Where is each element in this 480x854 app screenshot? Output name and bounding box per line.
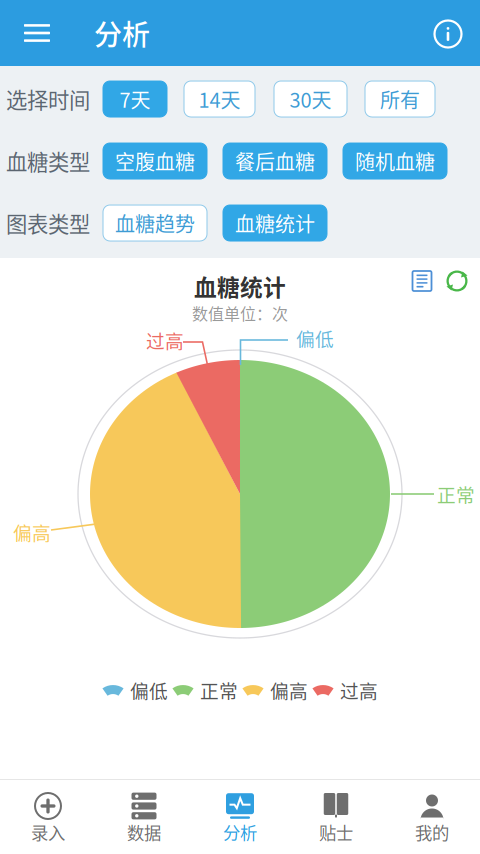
button[interactable]: 随机血糖 xyxy=(343,143,447,179)
staticText: 过高 xyxy=(340,676,378,703)
staticText: 贴士 xyxy=(319,819,353,845)
staticText: 正常 xyxy=(437,480,475,507)
staticText: 所有 xyxy=(380,84,420,113)
button[interactable]: 贴士 xyxy=(288,779,384,854)
staticText: 血糖统计 xyxy=(235,208,315,237)
staticText: 偏低 xyxy=(130,676,168,703)
button[interactable]: 餐后血糖 xyxy=(223,143,327,179)
staticText: 随机血糖 xyxy=(355,146,435,175)
staticText: 7天 xyxy=(119,84,150,113)
button[interactable]: 30天 xyxy=(274,81,347,117)
button[interactable]: 血糖趋势 xyxy=(103,205,207,241)
staticText: 空腹血糖 xyxy=(115,146,195,175)
staticText: 数值单位：次 xyxy=(192,301,288,325)
staticText: 14天 xyxy=(198,84,240,113)
button[interactable]: Refresh xyxy=(445,269,469,293)
button[interactable]: 7天 xyxy=(103,81,167,117)
staticText: 我的 xyxy=(415,819,449,845)
button[interactable]: 录入 xyxy=(0,779,96,854)
staticText: 录入 xyxy=(31,819,65,845)
staticText: 数据 xyxy=(127,819,161,845)
button[interactable]: 14天 xyxy=(184,81,255,117)
staticText: 偏低 xyxy=(296,324,334,351)
staticText: 餐后血糖 xyxy=(235,146,315,175)
staticText: 血糖趋势 xyxy=(115,208,195,237)
button[interactable]: 我的 xyxy=(384,779,480,854)
staticText: 30天 xyxy=(289,84,331,113)
staticText: 血糖统计 xyxy=(194,270,286,302)
staticText: 图表类型 xyxy=(6,208,90,238)
button[interactable]: 数据 xyxy=(96,779,192,854)
button[interactable]: Info xyxy=(421,1,475,67)
staticText: 偏高 xyxy=(270,676,308,703)
button[interactable]: 分析 xyxy=(192,779,288,854)
staticText: 血糖类型 xyxy=(6,146,90,176)
staticText: 正常 xyxy=(200,676,238,703)
button[interactable]: 所有 xyxy=(365,81,435,117)
staticText: 过高 xyxy=(146,326,184,353)
button[interactable]: Report xyxy=(411,269,433,293)
staticText: 分析 xyxy=(223,819,257,845)
staticText: 选择时间 xyxy=(6,84,90,114)
button[interactable]: 血糖统计 xyxy=(223,205,327,241)
button[interactable]: 空腹血糖 xyxy=(103,143,207,179)
staticText: 分析 xyxy=(94,13,150,53)
staticText: 偏高 xyxy=(13,518,51,545)
button[interactable]: Menu xyxy=(8,0,66,66)
